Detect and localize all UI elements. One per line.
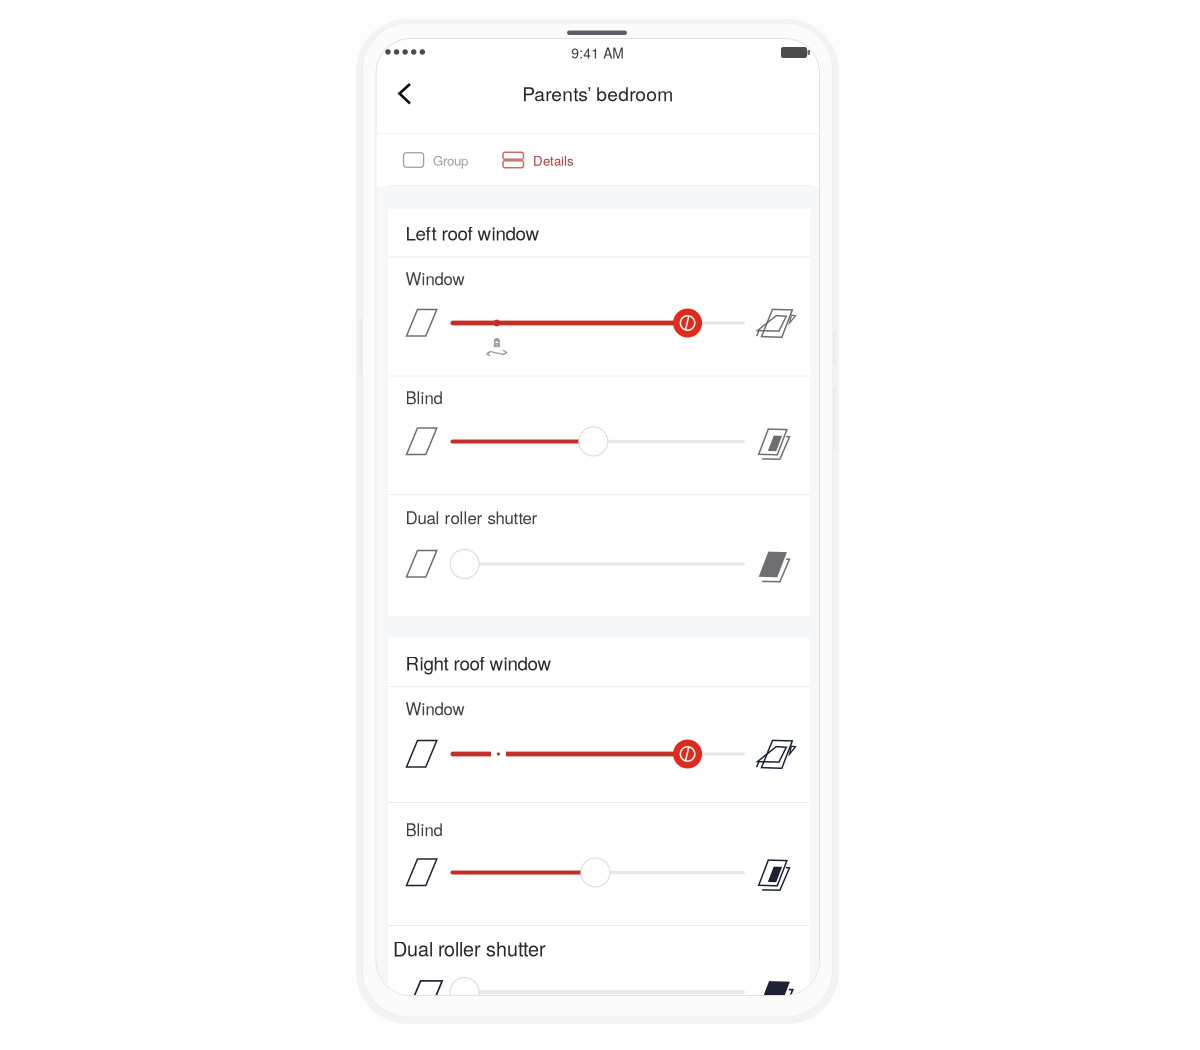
staticText: Left roof window xyxy=(405,219,539,246)
staticText: Blind xyxy=(405,817,442,841)
staticText: Group xyxy=(433,150,468,169)
staticText: Window xyxy=(405,266,464,290)
staticText: Dual roller shutter xyxy=(405,505,537,529)
staticText: Dual roller shutter xyxy=(393,934,546,962)
staticText: Window xyxy=(405,696,464,720)
staticText: Blind xyxy=(405,385,442,409)
button[interactable]: Group xyxy=(395,134,490,186)
button[interactable]: Back xyxy=(386,73,426,115)
button[interactable]: Details xyxy=(495,134,595,186)
staticText: Parents’ bedroom xyxy=(522,79,673,107)
staticText: 9:41 AM xyxy=(571,43,624,62)
staticText: Right roof window xyxy=(405,649,551,676)
staticText: Details xyxy=(533,150,574,169)
